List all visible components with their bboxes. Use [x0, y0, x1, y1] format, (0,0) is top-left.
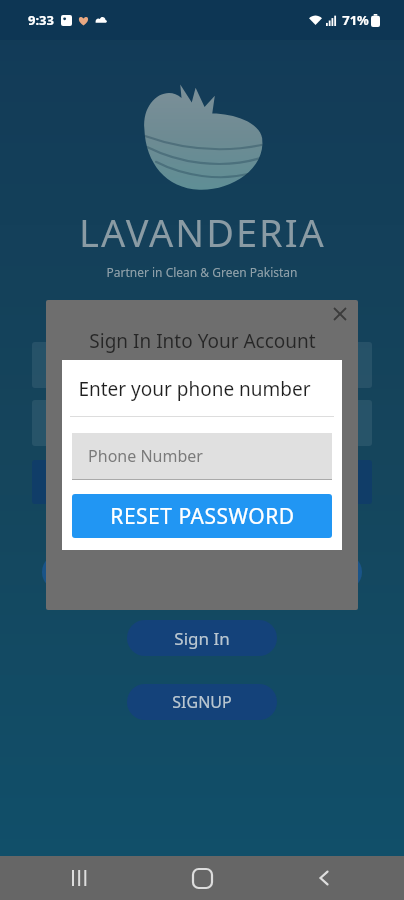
staticText: Enter your phone number [78, 376, 311, 402]
button[interactable]: Recents [60, 858, 100, 898]
staticText: Phone Number [88, 445, 203, 467]
staticText: 9:33 [28, 11, 54, 29]
staticText: Sign In [174, 627, 230, 650]
staticText: Partner in Clean & Green Pakistan [106, 264, 298, 280]
staticText: SIGNUP [172, 691, 232, 713]
button[interactable]: Home [182, 858, 222, 898]
button[interactable] [32, 342, 372, 388]
staticText: 71% [342, 11, 369, 29]
button[interactable]: Back [304, 858, 344, 898]
button[interactable]: Sign In [127, 620, 277, 656]
button[interactable]: Phone Number [72, 433, 332, 480]
button[interactable]: RESET PASSWORD [72, 494, 332, 538]
button[interactable]: SIGNUP [127, 684, 277, 720]
staticText: SIGN IN [167, 469, 238, 495]
button[interactable]: CHECK SERVICE AVAILABILITY [42, 554, 362, 590]
staticText: LAVANDERIA [79, 206, 326, 258]
staticText: Pick, Wash & Deliver [97, 294, 307, 324]
button[interactable]: Close [328, 302, 352, 326]
button[interactable]: SIGN IN [32, 460, 372, 504]
staticText: RESET PASSWORD [110, 502, 295, 531]
staticText: Sign In Into Your Account [89, 328, 316, 354]
button[interactable] [32, 400, 372, 446]
